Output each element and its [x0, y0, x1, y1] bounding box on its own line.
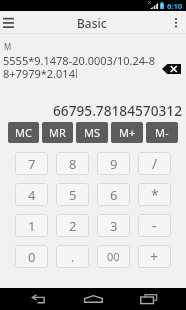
- button[interactable]: 5: [56, 183, 89, 206]
- button[interactable]: More options: [166, 11, 186, 34]
- button[interactable]: 9: [97, 152, 130, 175]
- staticText: -: [152, 216, 157, 235]
- button[interactable]: 8: [56, 152, 89, 175]
- staticText: 0: [28, 248, 36, 266]
- button[interactable]: MS: [76, 122, 108, 143]
- staticText: 6: [110, 186, 118, 204]
- button[interactable]: MC: [8, 122, 39, 143]
- button[interactable]: +: [138, 245, 171, 268]
- staticText: 66795.78184570312: [53, 101, 182, 120]
- staticText: 6:10: [167, 1, 183, 11]
- staticText: 8: [69, 155, 77, 173]
- staticText: *: [151, 185, 159, 204]
- staticText: 8+7979*2.014: [3, 66, 75, 81]
- button[interactable]: -: [138, 214, 171, 237]
- staticText: /: [152, 154, 158, 173]
- staticText: +: [150, 247, 159, 266]
- button[interactable]: 4: [15, 183, 48, 206]
- staticText: 4: [28, 186, 36, 204]
- staticText: 7: [28, 155, 36, 173]
- staticText: 5: [69, 186, 77, 204]
- button[interactable]: 2: [56, 214, 89, 237]
- staticText: M+: [119, 125, 136, 140]
- button[interactable]: MR: [42, 122, 73, 143]
- staticText: Basic: [77, 15, 107, 31]
- staticText: M-: [155, 125, 169, 140]
- button[interactable]: 1: [15, 214, 48, 237]
- button[interactable]: /: [138, 152, 171, 175]
- staticText: MR: [49, 125, 66, 140]
- button[interactable]: 6: [97, 183, 130, 206]
- staticText: 00: [107, 249, 120, 264]
- staticText: 5555*9.1478-20.0003/10.24-8: [3, 53, 155, 68]
- button[interactable]: 00: [97, 245, 130, 268]
- button[interactable]: Back: [31, 288, 47, 310]
- button[interactable]: 7: [15, 152, 48, 175]
- button[interactable]: *: [138, 183, 171, 206]
- button[interactable]: Navigation menu: [0, 11, 20, 34]
- staticText: M: [4, 41, 12, 52]
- button[interactable]: Recent apps: [140, 288, 157, 310]
- staticText: MS: [84, 125, 101, 140]
- staticText: 1: [28, 217, 36, 235]
- button[interactable]: 3: [97, 214, 130, 237]
- staticText: .: [71, 248, 75, 266]
- button[interactable]: Home: [84, 288, 103, 310]
- button[interactable]: .: [56, 245, 89, 268]
- button[interactable]: Backspace: [162, 64, 181, 74]
- staticText: 2: [69, 217, 77, 235]
- staticText: 9: [110, 155, 118, 173]
- staticText: MC: [15, 125, 32, 140]
- button[interactable]: M-: [146, 122, 178, 143]
- button[interactable]: M+: [111, 122, 143, 143]
- staticText: 3: [110, 217, 118, 235]
- button[interactable]: 0: [15, 245, 48, 268]
